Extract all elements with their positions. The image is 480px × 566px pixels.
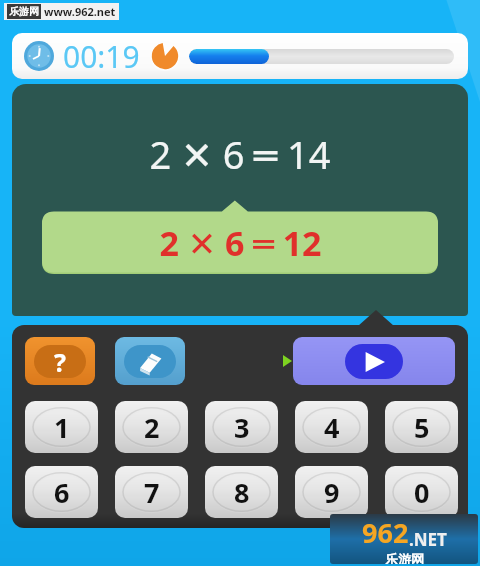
staticText: 8 [234, 474, 250, 511]
button[interactable]: 6 [25, 466, 98, 518]
staticText: 5 [414, 409, 430, 446]
button[interactable]: 4 [295, 401, 368, 453]
staticText: 0 [414, 474, 430, 511]
button[interactable]: 0 [385, 466, 458, 518]
staticText: 3 [234, 409, 250, 446]
staticText: ? [54, 345, 66, 378]
staticText: 2 ✕ 6 ═ 14 [149, 128, 331, 180]
staticText: www.962.net [44, 4, 116, 19]
button[interactable]: 3 [205, 401, 278, 453]
other: Score [150, 41, 180, 71]
staticText: 7 [144, 474, 160, 511]
button[interactable]: 8 [205, 466, 278, 518]
button[interactable]: Help [25, 337, 95, 385]
button[interactable]: Play [293, 337, 455, 385]
staticText: 乐游网 [385, 551, 424, 564]
staticText: .NET [409, 528, 447, 551]
staticText: 9 [324, 474, 340, 511]
staticText: 6 [54, 474, 70, 511]
button[interactable]: 5 [385, 401, 458, 453]
staticText: 00:19 [63, 36, 140, 77]
staticText: 1 [54, 409, 70, 446]
staticText: 4 [324, 409, 340, 446]
button[interactable]: 1 [25, 401, 98, 453]
button[interactable]: 7 [115, 466, 188, 518]
staticText: 2 [144, 409, 160, 446]
staticText: 2 ✕ 6 ═ 12 [159, 220, 322, 266]
staticText: 乐游网 [9, 5, 39, 18]
button[interactable]: 2 [115, 401, 188, 453]
button[interactable]: Erase [115, 337, 185, 385]
staticText: 962 [362, 514, 409, 551]
other: Timer [24, 41, 54, 71]
button[interactable]: 9 [295, 466, 368, 518]
